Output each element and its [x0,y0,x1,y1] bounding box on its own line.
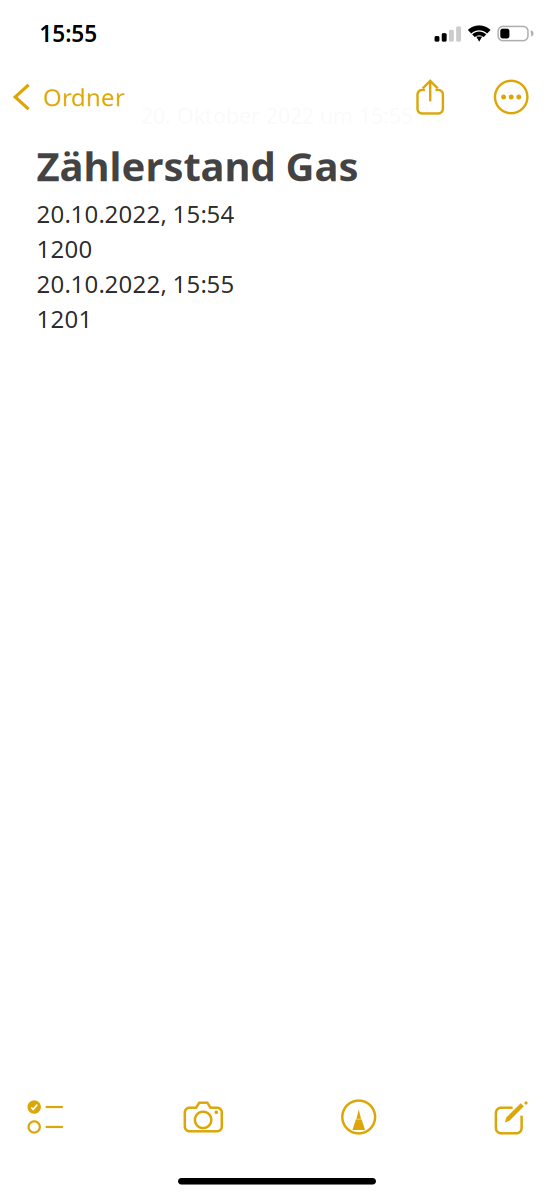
button[interactable]: Ordner [0,62,135,132]
staticText: 1201 [36,303,92,335]
button[interactable]: Share [405,62,455,132]
staticText: Zählerstand Gas [36,139,358,192]
staticText: Ordner [43,81,125,113]
staticText: 20.10.2022, 15:54 [36,198,234,230]
staticText: 20.10.2022, 15:55 [36,268,234,300]
button[interactable]: Markup [337,1093,381,1141]
button[interactable]: More options [487,62,535,132]
staticText: 1200 [36,233,92,265]
button[interactable]: Checklist [23,1093,67,1141]
button[interactable]: New Note [489,1093,533,1141]
button[interactable]: Camera [181,1093,225,1141]
staticText: 15:55 [39,18,97,48]
